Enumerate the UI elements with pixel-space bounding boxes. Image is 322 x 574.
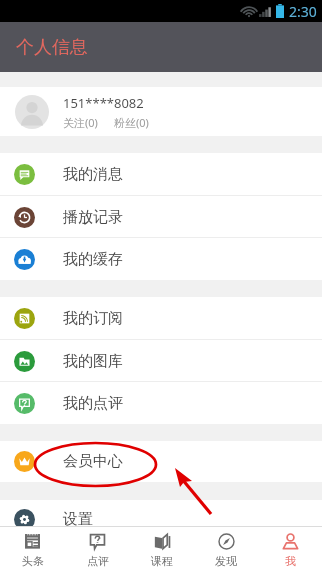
staticText: 发现	[215, 554, 237, 568]
staticText: 我的图库	[63, 352, 123, 371]
button[interactable]: 会员中心	[0, 441, 322, 482]
staticText: 个人信息	[16, 36, 88, 59]
staticText: 我的缓存	[63, 250, 123, 269]
staticText: 课程	[151, 554, 173, 568]
button[interactable]: 我的缓存	[0, 238, 322, 280]
button[interactable]: 我的消息	[0, 153, 322, 196]
staticText: 头条	[22, 554, 44, 568]
button[interactable]: 我	[258, 527, 322, 574]
staticText: 会员中心	[63, 452, 123, 471]
button[interactable]: 我的订阅	[0, 297, 322, 340]
staticText: 2:30	[289, 2, 317, 21]
staticText: 粉丝(0)	[114, 115, 149, 130]
staticText: 播放记录	[63, 208, 123, 227]
button[interactable]: 点评	[65, 527, 130, 574]
button[interactable]: 发现	[194, 527, 258, 574]
staticText: 设置	[63, 510, 93, 529]
staticText: 151****8082	[63, 94, 144, 112]
staticText: 我的消息	[63, 165, 123, 184]
staticText: 点评	[87, 554, 109, 568]
staticText: 我的点评	[63, 394, 123, 413]
button[interactable]: 播放记录	[0, 196, 322, 238]
button[interactable]: 151****8082	[0, 87, 322, 136]
button[interactable]: 头条	[0, 527, 65, 574]
button[interactable]: 设置	[0, 500, 322, 539]
button[interactable]: 我的点评	[0, 382, 322, 424]
staticText: 我	[285, 554, 296, 568]
staticText: 关注(0)	[63, 115, 98, 130]
button[interactable]: 我的图库	[0, 340, 322, 382]
button[interactable]: 课程	[130, 527, 194, 574]
staticText: 我的订阅	[63, 309, 123, 328]
